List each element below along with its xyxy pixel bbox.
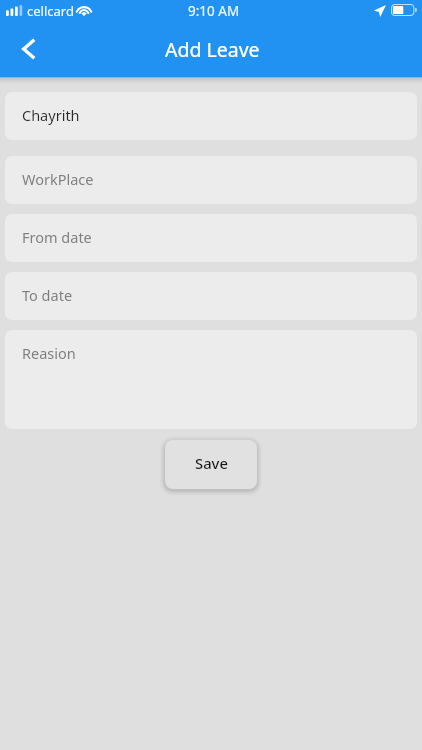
staticText: Reasion <box>22 343 76 363</box>
button[interactable]: Chayrith <box>5 92 417 140</box>
button[interactable]: From date <box>5 214 417 262</box>
button[interactable]: Back <box>7 27 51 71</box>
staticText: From date <box>22 227 92 247</box>
staticText: cellcard <box>27 2 74 20</box>
button[interactable]: Reasion <box>5 330 417 429</box>
button[interactable]: To date <box>5 272 417 320</box>
staticText: Save <box>195 453 228 473</box>
button[interactable]: Save <box>165 440 257 489</box>
staticText: To date <box>22 285 73 305</box>
staticText: WorkPlace <box>22 169 94 189</box>
button[interactable]: WorkPlace <box>5 156 417 204</box>
staticText: Add Leave <box>165 36 260 63</box>
staticText: Chayrith <box>22 105 80 125</box>
staticText: 9:10 AM <box>188 2 240 20</box>
